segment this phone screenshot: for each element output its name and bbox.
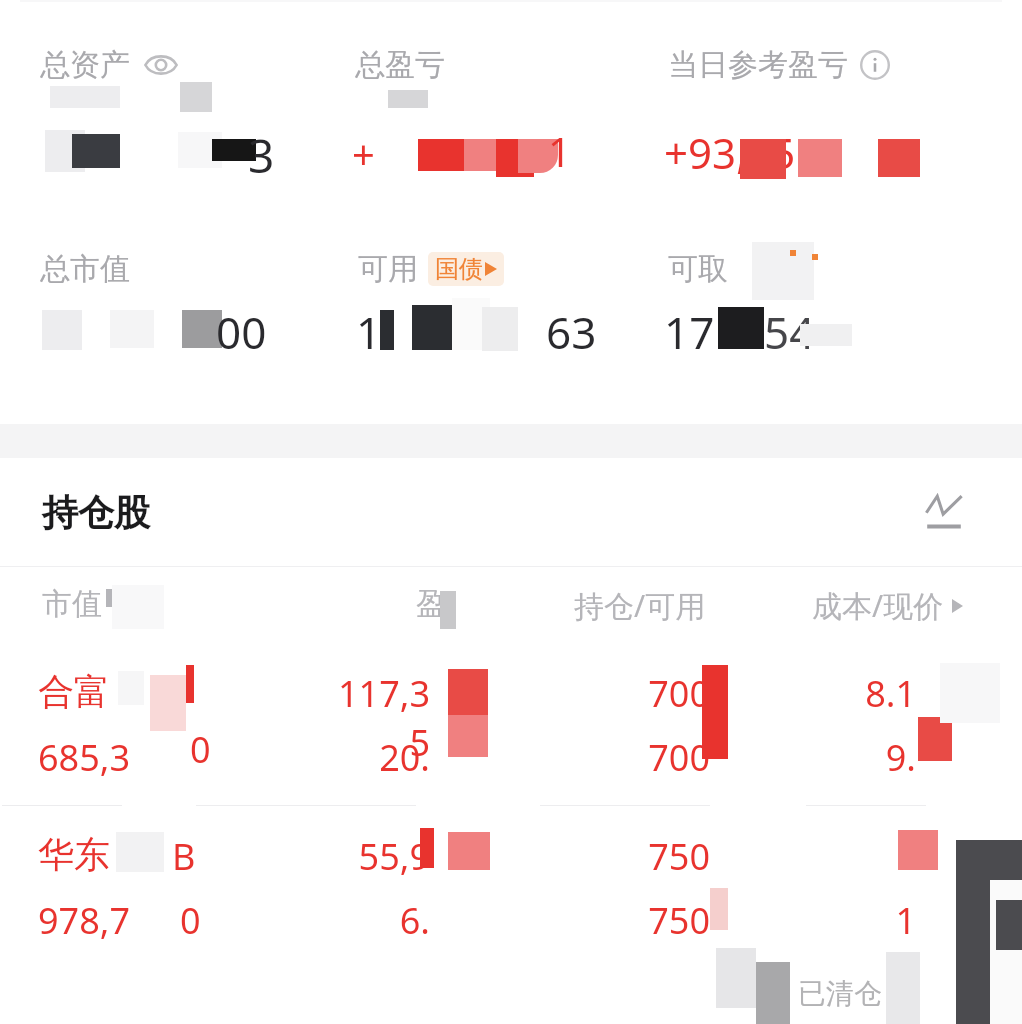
staticText: 持仓股: [42, 490, 150, 535]
staticText: 6.: [399, 896, 430, 945]
staticText: 700: [648, 733, 710, 782]
staticText: 8.1: [865, 669, 916, 718]
button[interactable]: 华东: [0, 806, 1022, 968]
staticText: 0: [190, 725, 211, 774]
staticText: 国债: [435, 254, 483, 284]
staticText: 17: [664, 302, 715, 362]
button[interactable]: 总资产: [40, 46, 182, 84]
button[interactable]: 成本/现价: [812, 585, 963, 626]
staticText: 1: [548, 124, 571, 178]
staticText: 54: [764, 302, 815, 362]
staticText: 117,35: [330, 669, 430, 767]
staticText: 55,9: [358, 832, 430, 881]
staticText: 9.: [885, 733, 916, 782]
staticText: 1: [895, 896, 916, 945]
staticText: 0: [180, 896, 201, 945]
staticText: 已清仓: [798, 976, 882, 1011]
button[interactable]: 持仓股: [0, 458, 1022, 566]
staticText: 总盈亏: [355, 46, 445, 84]
staticText: 当日参考盈亏: [668, 46, 848, 84]
staticText: 总资产: [40, 46, 130, 84]
staticText: 63: [546, 302, 597, 362]
staticText: 华东: [38, 832, 110, 877]
staticText: 685,3: [38, 733, 131, 782]
staticText: 总市值: [40, 250, 130, 288]
staticText: +93,05: [664, 124, 796, 181]
other: Info: [860, 50, 890, 80]
staticText: 可用: [358, 250, 418, 288]
staticText: 978,7: [38, 896, 131, 945]
staticText: 3: [248, 124, 275, 187]
staticText: +: [352, 126, 375, 180]
staticText: 市值: [42, 585, 102, 623]
staticText: 20.: [379, 733, 430, 782]
button[interactable]: 合富: [0, 643, 1022, 805]
staticText: 750: [648, 832, 710, 881]
button[interactable]: 当日参考盈亏: [668, 46, 890, 84]
staticText: 1: [895, 832, 916, 881]
staticText: 1: [356, 302, 382, 362]
staticText: 盈: [416, 585, 446, 623]
staticText: 00: [216, 302, 267, 362]
staticText: 持仓/可用: [574, 585, 706, 626]
button[interactable]: Chart view: [920, 488, 968, 536]
staticText: 700: [648, 669, 710, 718]
staticText: 750: [648, 896, 710, 945]
staticText: 可取: [668, 250, 728, 288]
staticText: 成本/现价: [812, 585, 944, 626]
staticText: 合富: [38, 669, 110, 714]
other: Toggle balance visibility: [144, 52, 178, 78]
button[interactable]: 可用: [358, 250, 504, 288]
staticText: B: [172, 832, 196, 881]
staticText: 4: [960, 828, 981, 877]
